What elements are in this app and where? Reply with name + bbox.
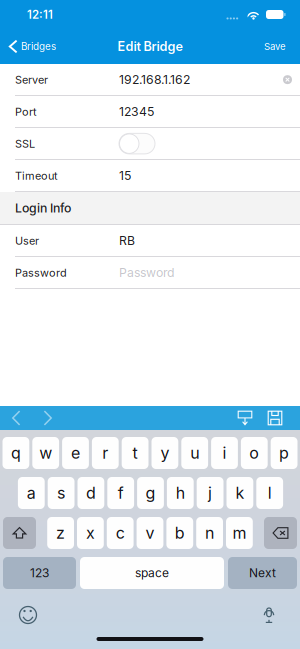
staticText: 123 bbox=[30, 566, 49, 580]
button[interactable]: v bbox=[137, 517, 163, 549]
button[interactable]: o bbox=[241, 437, 268, 469]
staticText: u bbox=[190, 443, 199, 463]
staticText: m bbox=[232, 523, 246, 543]
staticText: d bbox=[86, 483, 96, 503]
button[interactable]: q bbox=[2, 437, 29, 469]
staticText: Login Info bbox=[15, 201, 71, 215]
button[interactable]: Emoji bbox=[13, 604, 43, 626]
staticText: Save bbox=[264, 41, 286, 52]
staticText: v bbox=[145, 523, 154, 543]
button[interactable]: b bbox=[166, 517, 193, 549]
button[interactable]: Delete bbox=[264, 517, 297, 549]
button[interactable]: t bbox=[122, 437, 148, 469]
button[interactable]: r bbox=[92, 437, 119, 469]
staticText: t bbox=[133, 443, 138, 463]
staticText: h bbox=[176, 483, 185, 503]
button[interactable]: Hide keyboard bbox=[233, 406, 257, 430]
button[interactable]: x bbox=[77, 517, 104, 549]
staticText: z bbox=[56, 523, 65, 543]
staticText: User bbox=[15, 234, 39, 247]
button[interactable]: Previous field bbox=[0, 406, 32, 430]
button[interactable]: i bbox=[211, 437, 238, 469]
staticText: y bbox=[160, 443, 169, 463]
button[interactable]: Next bbox=[228, 557, 297, 589]
button[interactable]: g bbox=[137, 477, 164, 509]
button[interactable]: h bbox=[167, 477, 194, 509]
staticText: r bbox=[102, 443, 108, 463]
staticText: b bbox=[175, 523, 185, 543]
staticText: p bbox=[279, 443, 289, 463]
button[interactable]: space bbox=[80, 557, 224, 589]
staticText: j bbox=[208, 483, 212, 503]
staticText: n bbox=[205, 523, 214, 543]
button[interactable]: e bbox=[62, 437, 89, 469]
staticText: k bbox=[235, 483, 244, 503]
staticText: q bbox=[11, 443, 21, 463]
button[interactable]: m bbox=[226, 517, 253, 549]
button[interactable]: z bbox=[47, 517, 74, 549]
staticText: e bbox=[71, 443, 80, 463]
button[interactable]: c bbox=[107, 517, 134, 549]
button[interactable]: d bbox=[77, 477, 104, 509]
staticText: Next bbox=[249, 566, 276, 580]
staticText: i bbox=[222, 443, 226, 463]
staticText: 192.168.1.162 bbox=[119, 72, 190, 87]
staticText: Password bbox=[15, 266, 67, 279]
button[interactable]: Bridges bbox=[0, 29, 62, 63]
button[interactable]: s bbox=[48, 477, 74, 509]
staticText: c bbox=[116, 523, 125, 543]
staticText: g bbox=[145, 483, 155, 503]
staticText: 12:11 bbox=[27, 8, 53, 21]
button[interactable]: w bbox=[32, 437, 59, 469]
staticText: Bridges bbox=[21, 40, 56, 52]
staticText: x bbox=[86, 523, 95, 543]
button[interactable]: Save bbox=[263, 406, 287, 430]
staticText: 15 bbox=[119, 168, 131, 183]
staticText: w bbox=[39, 443, 52, 463]
staticText: l bbox=[268, 483, 272, 503]
staticText: s bbox=[57, 483, 65, 503]
staticText: Timeout bbox=[15, 169, 58, 182]
staticText: Server bbox=[15, 73, 48, 86]
button[interactable]: k bbox=[226, 477, 253, 509]
staticText: 12345 bbox=[119, 104, 154, 119]
button[interactable]: Dictate bbox=[254, 604, 284, 626]
staticText: RB bbox=[119, 233, 135, 248]
staticText: Port bbox=[15, 105, 37, 118]
button[interactable]: SSL bbox=[119, 133, 155, 154]
button[interactable]: y bbox=[151, 437, 178, 469]
staticText: f bbox=[118, 483, 124, 503]
button[interactable]: u bbox=[181, 437, 208, 469]
button[interactable]: Shift bbox=[3, 517, 36, 549]
staticText: space bbox=[135, 566, 169, 580]
button[interactable]: 123 bbox=[3, 557, 76, 589]
button[interactable]: n bbox=[196, 517, 223, 549]
button[interactable]: a bbox=[18, 477, 45, 509]
staticText: Edit Bridge bbox=[117, 39, 182, 54]
button[interactable]: Clear text bbox=[278, 71, 296, 89]
staticText: o bbox=[249, 443, 259, 463]
button[interactable]: j bbox=[197, 477, 223, 509]
button[interactable]: Save bbox=[254, 29, 300, 63]
button[interactable]: f bbox=[107, 477, 134, 509]
staticText: a bbox=[27, 483, 36, 503]
button[interactable]: p bbox=[271, 437, 297, 469]
staticText: SSL bbox=[15, 137, 35, 150]
staticText: Password bbox=[119, 265, 175, 280]
button[interactable]: Next field bbox=[32, 406, 64, 430]
button[interactable]: l bbox=[256, 477, 283, 509]
